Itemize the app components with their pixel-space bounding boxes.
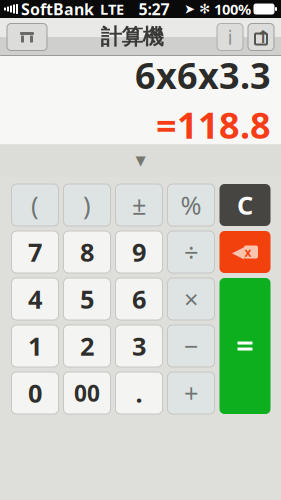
button[interactable]: 0: [11, 372, 58, 414]
staticText: ➤: [184, 1, 195, 16]
staticText: ×: [184, 282, 198, 316]
staticText: 7: [28, 235, 42, 269]
button[interactable]: Share: [244, 22, 275, 52]
staticText: 100%: [214, 0, 251, 19]
staticText: .: [135, 376, 142, 410]
staticText: 3: [132, 329, 146, 363]
staticText: %: [180, 188, 201, 222]
staticText: 6x6x3.3: [135, 51, 271, 99]
button[interactable]: Info: [216, 22, 244, 52]
button[interactable]: ): [63, 184, 110, 226]
staticText: ✻: [199, 1, 210, 16]
staticText: SoftBank: [21, 0, 94, 20]
staticText: 1: [28, 329, 42, 363]
button[interactable]: Equals: [219, 278, 270, 414]
staticText: 2: [80, 329, 94, 363]
button[interactable]: ÷: [167, 231, 214, 273]
button[interactable]: 4: [11, 278, 58, 320]
staticText: ±: [132, 188, 146, 222]
staticText: 5:27: [138, 0, 169, 20]
button[interactable]: %: [167, 184, 214, 226]
staticText: −: [184, 329, 198, 363]
staticText: +: [184, 376, 198, 410]
button[interactable]: (: [11, 184, 58, 226]
staticText: ↑: [256, 27, 271, 47]
button[interactable]: +: [167, 372, 214, 414]
staticText: 00: [74, 378, 100, 408]
button[interactable]: 9: [115, 231, 162, 273]
staticText: 8: [80, 235, 94, 269]
staticText: 4: [28, 282, 42, 316]
button[interactable]: Collapse: [0, 144, 281, 177]
staticText: i: [227, 24, 232, 50]
staticText: ▼: [135, 153, 145, 168]
staticText: ÷: [184, 235, 198, 269]
staticText: ): [83, 188, 91, 222]
button[interactable]: 6: [115, 278, 162, 320]
button[interactable]: ±: [115, 184, 162, 226]
staticText: 9: [132, 235, 146, 269]
staticText: C: [237, 188, 253, 222]
button[interactable]: 00: [63, 372, 110, 414]
staticText: x: [244, 244, 251, 260]
staticText: 計算機: [100, 24, 163, 50]
staticText: =118.8: [156, 101, 271, 149]
staticText: 6: [132, 282, 146, 316]
staticText: 0: [28, 376, 42, 410]
button[interactable]: ×: [167, 278, 214, 320]
staticText: ◀: [232, 243, 244, 261]
button[interactable]: Home: [6, 22, 48, 52]
button[interactable]: Delete: [219, 231, 270, 273]
button[interactable]: −: [167, 325, 214, 367]
button[interactable]: 2: [63, 325, 110, 367]
button[interactable]: C: [219, 184, 270, 226]
button[interactable]: 3: [115, 325, 162, 367]
staticText: (: [31, 188, 39, 222]
button[interactable]: .: [115, 372, 162, 414]
button[interactable]: 7: [11, 231, 58, 273]
button[interactable]: 8: [63, 231, 110, 273]
staticText: LTE: [100, 0, 124, 19]
staticText: 5: [80, 282, 94, 316]
button[interactable]: 1: [11, 325, 58, 367]
button[interactable]: 5: [63, 278, 110, 320]
